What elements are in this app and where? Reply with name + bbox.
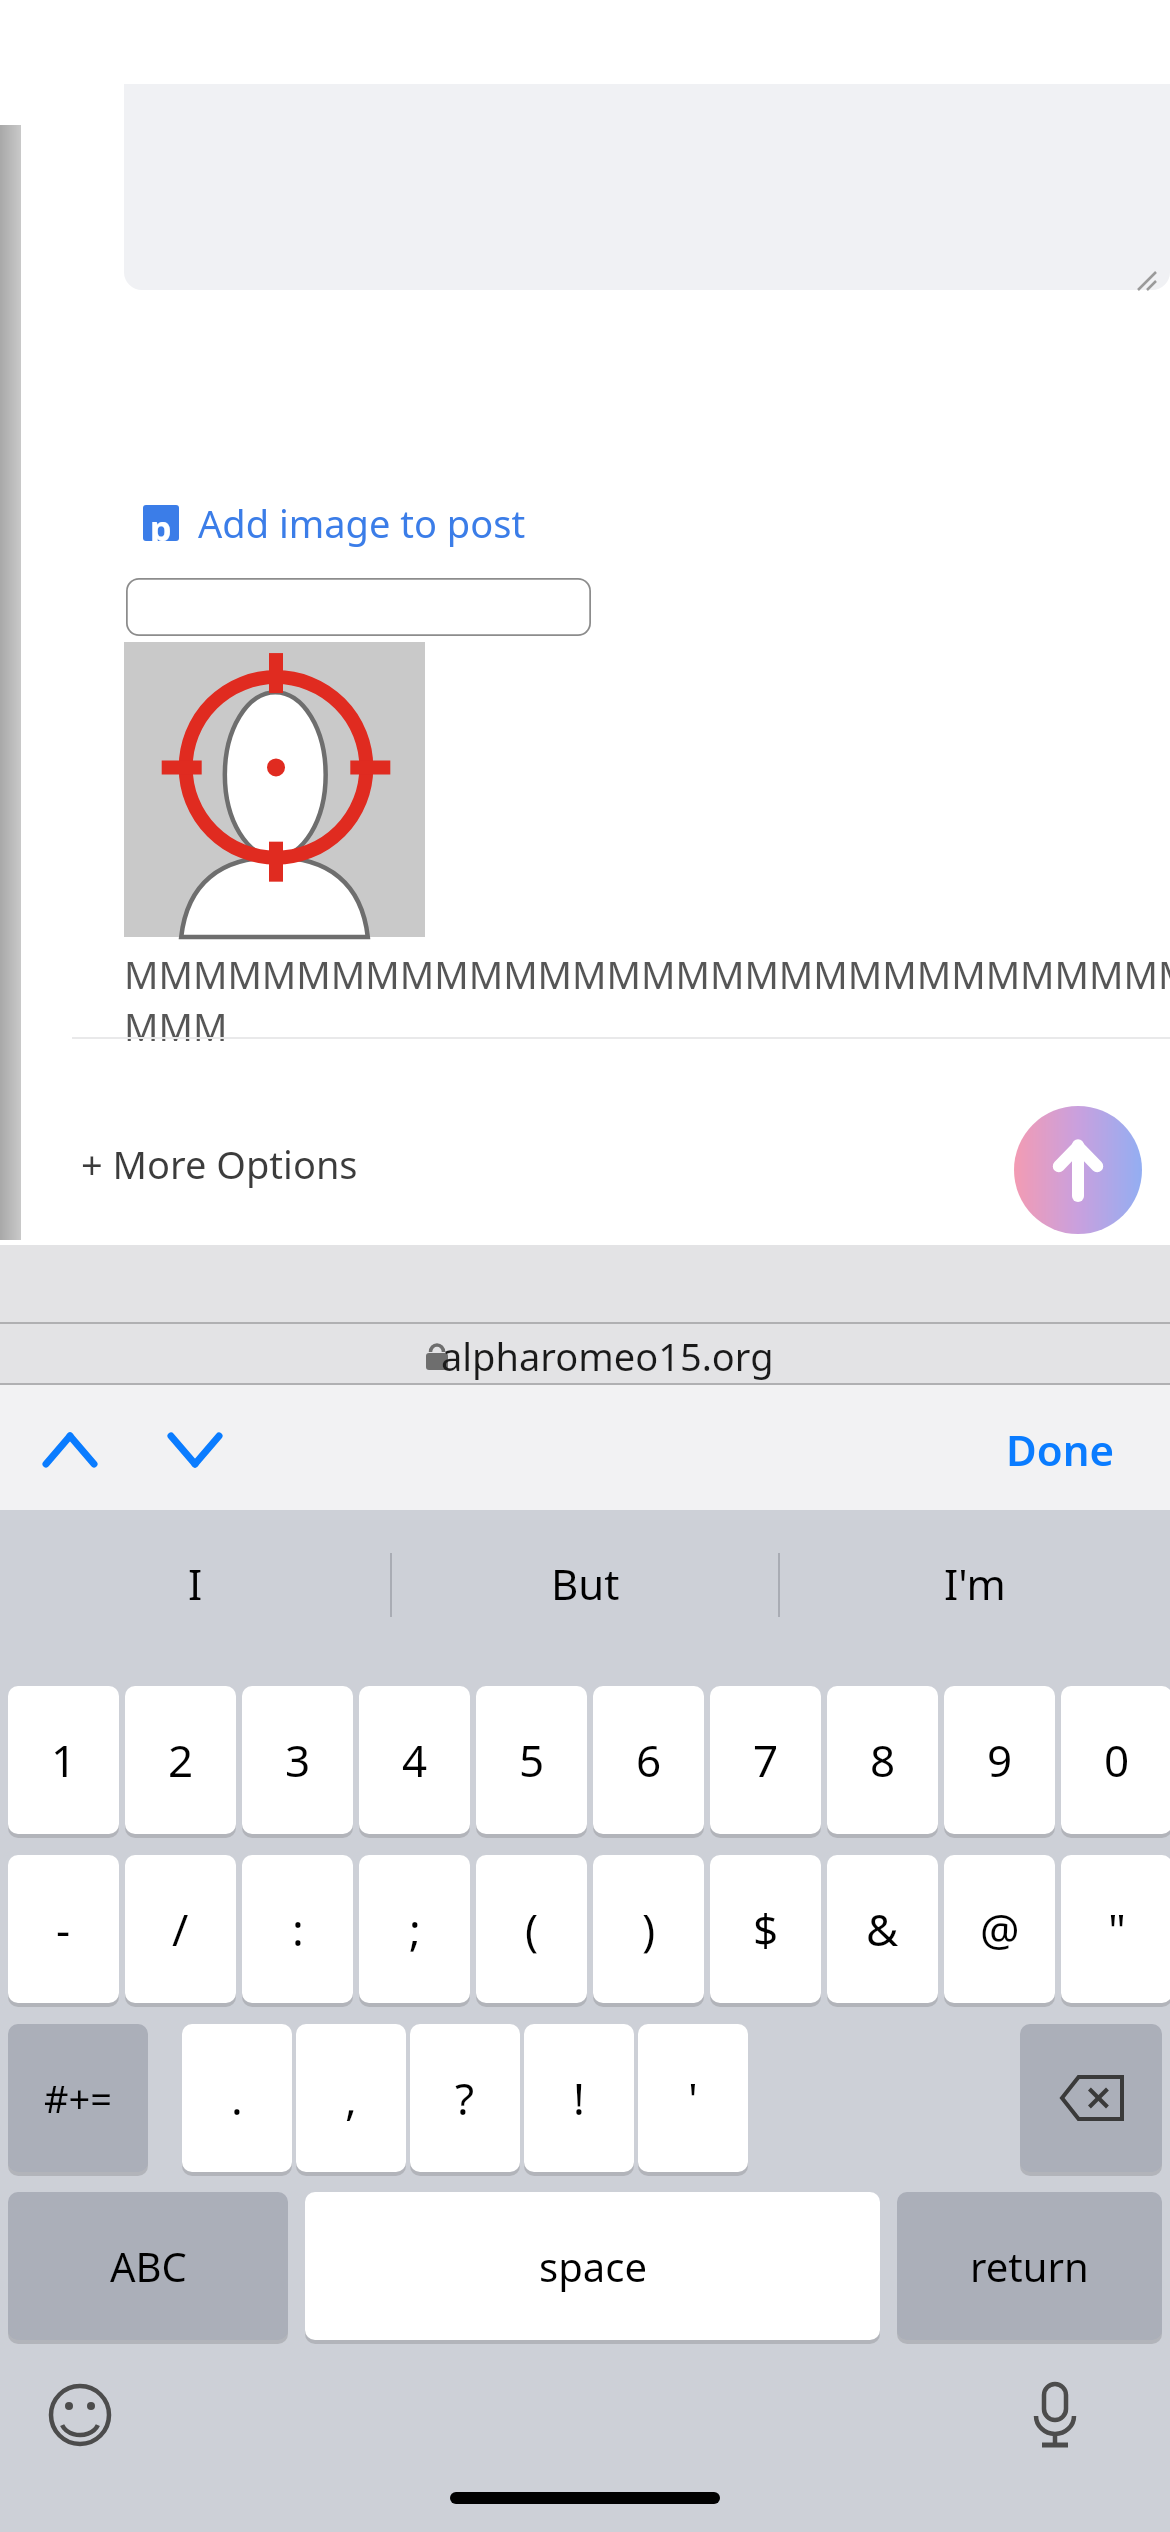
button[interactable]: 8 [827, 1686, 938, 1834]
staticText: / [172, 1899, 189, 1959]
staticText: 3 [285, 1730, 311, 1790]
button[interactable]: Previous field [20, 1415, 120, 1485]
button[interactable]: 1 [8, 1686, 119, 1834]
staticText: alpharomeo15.org [441, 1330, 774, 1382]
staticText: & [866, 1899, 899, 1959]
button[interactable]: I [15, 1545, 375, 1621]
button[interactable]: But [405, 1545, 765, 1621]
staticText: . [231, 2068, 243, 2128]
button[interactable]: space [305, 2192, 880, 2340]
button[interactable]: 4 [359, 1686, 470, 1834]
button[interactable]: - [8, 1855, 119, 2003]
staticText: p [150, 505, 172, 541]
staticText: 6 [636, 1730, 662, 1790]
staticText: - [56, 1899, 71, 1959]
staticText: Done [1006, 1421, 1115, 1478]
staticText: 4 [402, 1730, 428, 1790]
button[interactable] [126, 578, 591, 636]
button[interactable]: p [138, 493, 558, 553]
button[interactable]: " [1061, 1855, 1170, 2003]
staticText: , [345, 2068, 357, 2128]
button[interactable]: return [897, 2192, 1162, 2340]
button[interactable]: ; [359, 1855, 470, 2003]
button[interactable]: , [296, 2024, 406, 2172]
staticText: 7 [753, 1730, 779, 1790]
button[interactable]: ? [410, 2024, 520, 2172]
staticText: " [1108, 1899, 1126, 1959]
button[interactable]: Next field [145, 1415, 245, 1485]
staticText: ( [525, 1899, 539, 1959]
staticText: I'm [944, 1555, 1006, 1612]
staticText: ; [409, 1899, 421, 1959]
staticText: space [539, 2239, 647, 2293]
button[interactable]: ! [524, 2024, 634, 2172]
staticText: $ [753, 1899, 779, 1959]
staticText: + More Options [81, 1138, 358, 1190]
button[interactable]: Submit [1014, 1106, 1142, 1234]
button[interactable]: ( [476, 1855, 587, 2003]
button[interactable]: alpharomeo15.org [405, 1330, 765, 1382]
button[interactable]: 6 [593, 1686, 704, 1834]
staticText: 0 [1104, 1730, 1130, 1790]
button[interactable]: & [827, 1855, 938, 2003]
button[interactable]: ABC [8, 2192, 288, 2340]
button[interactable]: I'm [795, 1545, 1155, 1621]
button[interactable]: 7 [710, 1686, 821, 1834]
staticText: 8 [870, 1730, 896, 1790]
button[interactable]: ' [638, 2024, 748, 2172]
staticText: ABC [110, 2239, 187, 2293]
staticText: MMMMMMMMMMMMMMMMMMMMMMMMMMMMMMMMMMMM [124, 948, 1170, 1052]
staticText: 1 [51, 1730, 77, 1790]
button[interactable]: : [242, 1855, 353, 2003]
button[interactable]: $ [710, 1855, 821, 2003]
button[interactable]: Delete [1020, 2024, 1162, 2172]
staticText: return [970, 2239, 1089, 2293]
staticText: ' [688, 2068, 698, 2128]
button[interactable]: Dictation [1020, 2380, 1090, 2450]
staticText: Add image to post [198, 497, 526, 549]
button[interactable]: 2 [125, 1686, 236, 1834]
staticText: ? [455, 2068, 475, 2128]
button[interactable]: 5 [476, 1686, 587, 1834]
staticText: ! [573, 2068, 585, 2128]
button[interactable]: Emoji [45, 2380, 115, 2450]
button[interactable]: / [125, 1855, 236, 2003]
staticText: #+= [44, 2072, 113, 2124]
button[interactable]: 0 [1061, 1686, 1170, 1834]
staticText: ) [642, 1899, 656, 1959]
button[interactable]: ) [593, 1855, 704, 2003]
button[interactable]: Done [980, 1412, 1140, 1486]
button[interactable]: #+= [8, 2024, 148, 2172]
staticText: 2 [168, 1730, 194, 1790]
staticText: : [292, 1899, 304, 1959]
button[interactable]: . [182, 2024, 292, 2172]
button[interactable]: @ [944, 1855, 1055, 2003]
button[interactable]: 9 [944, 1686, 1055, 1834]
staticText: But [551, 1555, 620, 1612]
staticText: I [188, 1555, 203, 1612]
staticText: 9 [987, 1730, 1013, 1790]
staticText: @ [980, 1899, 1020, 1959]
button[interactable]: + More Options [70, 1132, 410, 1196]
staticText: 5 [519, 1730, 545, 1790]
button[interactable]: 3 [242, 1686, 353, 1834]
